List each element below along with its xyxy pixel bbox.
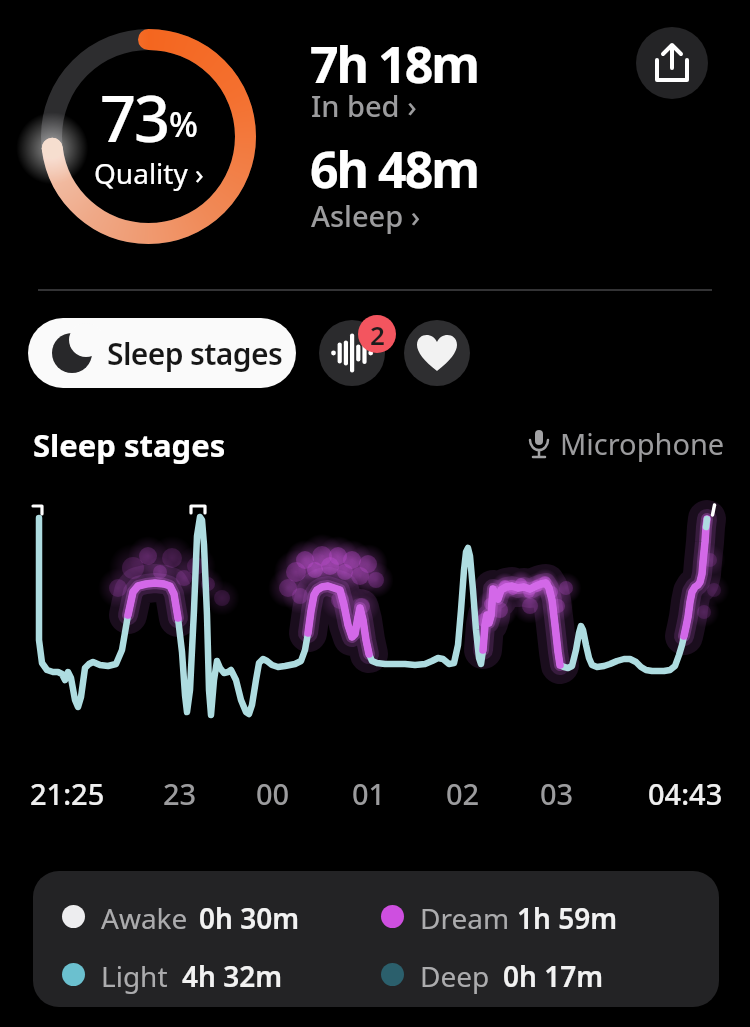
staticText: Light xyxy=(101,957,168,995)
staticText: 4h 32m xyxy=(182,957,283,995)
staticText: Sleep stages xyxy=(33,424,226,466)
button[interactable] xyxy=(404,320,470,386)
staticText: 0h 17m xyxy=(503,957,604,995)
button[interactable]: Awake xyxy=(33,871,719,1007)
staticText: 2 xyxy=(370,317,385,352)
button[interactable] xyxy=(636,27,708,99)
staticText: 23 xyxy=(163,774,197,813)
staticText: 73 xyxy=(100,75,169,161)
staticText: In bed › xyxy=(311,86,417,125)
button[interactable] xyxy=(319,320,385,386)
staticText: Sleep stages xyxy=(107,333,283,374)
staticText: 02 xyxy=(446,774,480,813)
staticText: Quality › xyxy=(94,154,204,192)
staticText: Microphone xyxy=(560,424,725,463)
staticText: Dream xyxy=(420,899,510,937)
staticText: 03 xyxy=(540,774,574,813)
staticText: Deep xyxy=(420,957,490,995)
staticText: 0h 30m xyxy=(199,899,300,937)
staticText: 21:25 xyxy=(30,774,105,813)
staticText: Asleep › xyxy=(311,196,421,235)
button[interactable]: 73 xyxy=(40,28,257,245)
staticText: % xyxy=(169,101,198,147)
staticText: 00 xyxy=(256,774,290,813)
staticText: 6h 48m xyxy=(310,135,479,203)
staticText: Awake xyxy=(101,899,188,937)
staticText: 01 xyxy=(352,774,386,813)
staticText: 7h 18m xyxy=(310,30,479,98)
button[interactable]: Sleep stages xyxy=(28,318,296,388)
staticText: 04:43 xyxy=(648,774,723,813)
staticText: 1h 59m xyxy=(517,899,618,937)
